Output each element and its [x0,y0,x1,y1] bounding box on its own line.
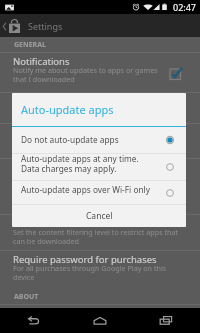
button[interactable]: Require password for purchases [0,251,200,289]
staticText: For all purchases through Google Play on… [13,263,167,282]
staticText: Auto-update apps over Wi-Fi only [13,105,125,115]
staticText: Set the content filtering level to restr… [13,227,179,246]
button[interactable]: Auto-update apps [0,93,200,123]
button[interactable]: Content filtering [0,159,200,214]
staticText: 02:47 [173,1,197,13]
button[interactable]: Back [0,308,66,333]
button[interactable]: Clear local search history [0,124,200,158]
staticText: Cancel [86,210,113,222]
button[interactable]: Cancel [12,205,186,227]
button[interactable]: Recent apps [133,308,200,333]
staticText: Do not auto-update apps [21,134,165,145]
staticText: Require password for purchases [13,253,157,266]
staticText: GENERAL [14,40,46,50]
staticText: Auto-update apps over Wi-Fi only [21,184,165,195]
button[interactable]: Parental controls [0,215,200,250]
button[interactable]: Notifications [0,53,200,92]
staticText: Clear local search history [13,126,125,139]
staticText: Remove all the searches you have perform… [13,136,166,146]
staticText: Settings [28,20,63,32]
staticText: Notify me about updates to apps or games… [13,65,158,84]
button[interactable]: Navigate up [0,19,22,33]
button[interactable]: Auto-update apps over Wi-Fi only [12,181,186,204]
staticText: Set the content filtering level to restr… [13,171,179,190]
staticText: Notifications [13,55,70,68]
button[interactable]: Auto-update apps at any time. Data charg… [12,154,186,180]
button[interactable]: Do not auto-update apps [12,127,186,153]
button[interactable]: Home [66,308,133,333]
staticText: Auto-update apps at any time. Data charg… [21,153,165,174]
staticText: Content filtering [13,161,87,174]
staticText: Auto-update apps [13,95,93,108]
staticText: Parental controls [13,217,89,230]
staticText: Auto-update apps [21,102,114,117]
staticText: ABOUT [14,292,39,302]
